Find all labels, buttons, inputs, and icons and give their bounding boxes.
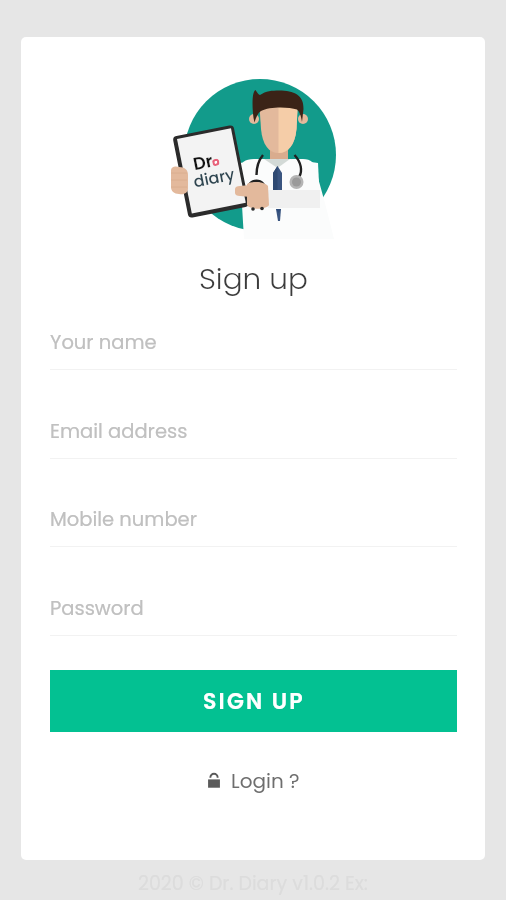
staticText: Your name [50,329,157,356]
staticText: SIGN UP [203,686,305,717]
staticText: diary [191,163,237,192]
button[interactable]: Login [200,763,306,799]
button[interactable]: Password [50,589,457,636]
staticText: Email address [50,418,188,445]
other: Login [206,773,222,789]
button[interactable]: Mobile number [50,500,457,547]
button[interactable]: SIGN UP [50,670,457,732]
button[interactable]: Your name [50,323,457,370]
staticText: Sign up [199,258,308,299]
staticText: Password [50,595,144,622]
staticText: Dr [191,149,215,177]
staticText: Mobile number [50,506,197,533]
staticText: Login ? [231,767,300,795]
button[interactable]: Email address [50,412,457,459]
staticText: 2020 © Dr. Diary v1.0.2 Ex: [138,870,368,897]
